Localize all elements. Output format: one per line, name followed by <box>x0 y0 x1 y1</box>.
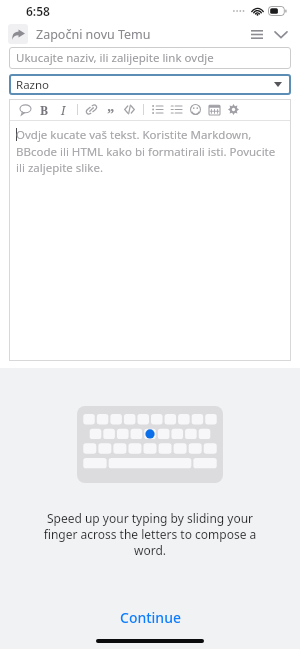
button[interactable]: Reply <box>8 24 151 44</box>
button[interactable]: Code <box>120 100 139 119</box>
button[interactable]: Italic <box>54 100 73 119</box>
other: Reply <box>8 24 28 44</box>
button[interactable]: Calendar <box>205 100 224 119</box>
staticText: 6:58 <box>26 3 50 19</box>
staticText: ” <box>107 103 115 122</box>
button[interactable]: Collapse <box>270 23 292 45</box>
button[interactable]: Numbered list <box>167 100 186 119</box>
staticText: Ovdje kucate vaš tekst. Koristite Markdo… <box>16 127 282 175</box>
staticText: I <box>61 102 66 118</box>
button[interactable]: Menu <box>246 23 268 45</box>
other: Keyboard illustration <box>77 406 223 483</box>
button[interactable]: Bulleted list <box>148 100 167 119</box>
button[interactable]: Link <box>82 100 101 119</box>
button[interactable]: Razno <box>9 74 291 95</box>
staticText: Continue <box>120 608 181 627</box>
button[interactable]: Bold <box>35 100 54 119</box>
staticText: Speed up your typing by sliding your fin… <box>36 510 264 558</box>
button[interactable]: Settings <box>224 100 243 119</box>
staticText: B <box>40 102 49 118</box>
button[interactable]: Emoji <box>186 100 205 119</box>
staticText: Ukucajte naziv, ili zalijepite link ovdj… <box>16 50 214 66</box>
button[interactable]: Quote <box>101 100 120 119</box>
staticText: Započni novu Temu <box>36 26 151 43</box>
button[interactable]: Continue <box>98 603 203 632</box>
button[interactable]: Ukucajte naziv, ili zalijepite link ovdj… <box>9 47 291 69</box>
staticText: Razno <box>16 77 50 93</box>
button[interactable]: Comment <box>16 100 35 119</box>
